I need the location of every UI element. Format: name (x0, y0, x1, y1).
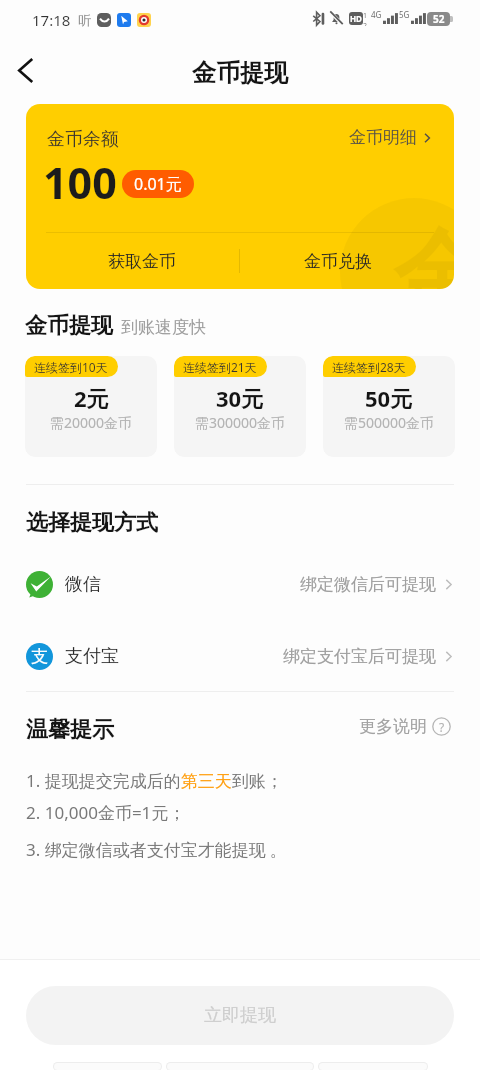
staticText: 需500000金币 (344, 413, 435, 432)
staticText: 需20000金币 (50, 413, 133, 432)
staticText: 100 (43, 153, 117, 212)
staticText: 连续签到10天 (34, 359, 108, 375)
staticText: 支付宝 (65, 645, 119, 668)
button[interactable]: 支 (0, 628, 480, 684)
staticText: 温馨提示 (26, 716, 114, 744)
staticText: 0.01元 (134, 173, 182, 195)
staticText: 金币提现 (192, 58, 288, 88)
staticText: 连续签到28天 (332, 359, 406, 375)
staticText: 50元 (365, 383, 413, 413)
button[interactable]: 连续签到10天 (25, 356, 157, 457)
button[interactable]: 金币兑换 (239, 233, 454, 289)
staticText: 金币兑换 (304, 251, 372, 272)
staticText: 获取金币 (108, 251, 176, 272)
staticText: 2 (363, 21, 368, 26)
staticText: 金币提现 (25, 312, 113, 340)
staticText: 更多说明 (359, 716, 427, 737)
staticText: 1. 提现提交完成后的第三天到账； (26, 769, 283, 792)
staticText: 金 (393, 216, 454, 289)
staticText: 30元 (216, 383, 264, 413)
staticText: ? (439, 719, 445, 735)
staticText: 绑定微信后可提现 (300, 574, 436, 595)
staticText: 立即提现 (204, 1004, 276, 1027)
staticText: 4G (371, 9, 382, 20)
staticText: 绑定支付宝后可提现 (283, 646, 436, 667)
staticText: HD (350, 13, 362, 24)
staticText: 金币余额 (47, 128, 119, 151)
staticText: 选择提现方式 (26, 509, 158, 537)
staticText: 1 (363, 11, 368, 21)
staticText: 金币明细 (349, 127, 417, 148)
staticText: 连续签到21天 (183, 359, 257, 375)
button[interactable]: 金币明细 (349, 127, 432, 148)
staticText: 17:18 (32, 10, 71, 30)
staticText: 2元 (74, 383, 109, 413)
staticText: 需300000金币 (195, 413, 286, 432)
staticText: 听 (78, 12, 91, 28)
staticText: 支 (31, 646, 48, 667)
staticText: 2. 10,000金币=1元； (26, 801, 186, 824)
button[interactable]: Back (4, 49, 46, 91)
staticText: 微信 (65, 573, 101, 596)
button[interactable]: 立即提现 (26, 986, 454, 1045)
button[interactable]: 获取金币 (26, 233, 239, 289)
staticText: 到账速度快 (121, 317, 206, 338)
button[interactable]: 连续签到28天 (323, 356, 455, 457)
button[interactable]: 连续签到21天 (174, 356, 306, 457)
staticText: 52 (433, 12, 445, 26)
button[interactable]: 更多说明 (359, 716, 451, 737)
button[interactable]: 微信 (0, 556, 480, 612)
staticText: 3. 绑定微信或者支付宝才能提现 。 (26, 838, 288, 861)
staticText: 5G (399, 9, 410, 20)
